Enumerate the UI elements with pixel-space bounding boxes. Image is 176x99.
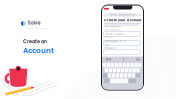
staticText: Create your account	[104, 17, 141, 23]
staticText: Create an	[23, 38, 47, 45]
staticText: Email address	[104, 36, 115, 43]
staticText: Solve	[27, 19, 40, 26]
staticText: solve.app/signup	[110, 13, 135, 16]
staticText: I	[123, 57, 124, 62]
staticText: jane@solve.app	[105, 40, 126, 47]
staticText: “Im”	[105, 57, 111, 62]
staticText: Password	[104, 46, 116, 50]
staticText: Learn · Build · Ship	[28, 27, 49, 30]
staticText: Account	[23, 45, 54, 56]
staticText: Full name	[104, 28, 119, 32]
staticText: Im	[135, 57, 139, 62]
staticText: Jane Cooper	[105, 32, 124, 36]
